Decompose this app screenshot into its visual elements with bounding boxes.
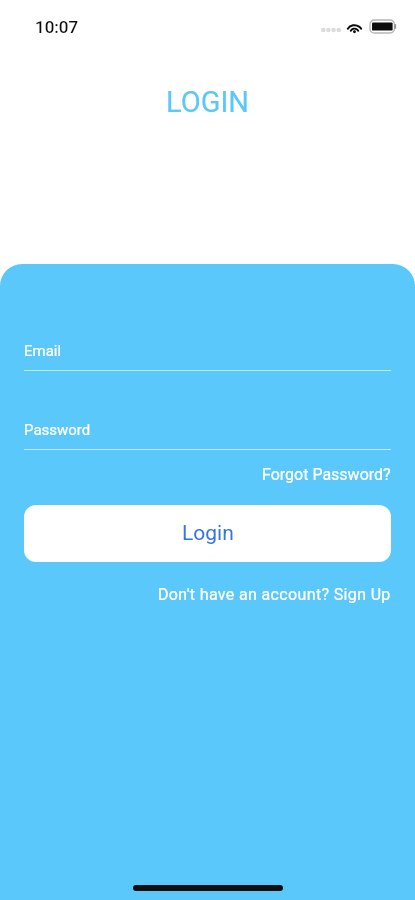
button[interactable]: Password bbox=[24, 405, 391, 451]
button[interactable]: Email bbox=[24, 326, 391, 372]
staticText: Don't have an account? Sign Up bbox=[158, 585, 391, 604]
staticText: Email bbox=[24, 342, 62, 360]
other: Cellular signal bbox=[321, 27, 341, 33]
button[interactable]: Login bbox=[24, 505, 391, 562]
staticText: Login bbox=[182, 521, 234, 546]
button[interactable]: Don't have an account? Sign Up bbox=[154, 582, 395, 607]
other: Battery bbox=[370, 20, 397, 33]
staticText: Password bbox=[24, 421, 91, 439]
staticText: Forgot Password? bbox=[262, 465, 391, 484]
button[interactable]: Forgot Password? bbox=[258, 462, 395, 487]
staticText: LOGIN bbox=[166, 85, 249, 119]
staticText: 10:07 bbox=[35, 17, 79, 37]
other: Wi-Fi bbox=[346, 20, 363, 33]
